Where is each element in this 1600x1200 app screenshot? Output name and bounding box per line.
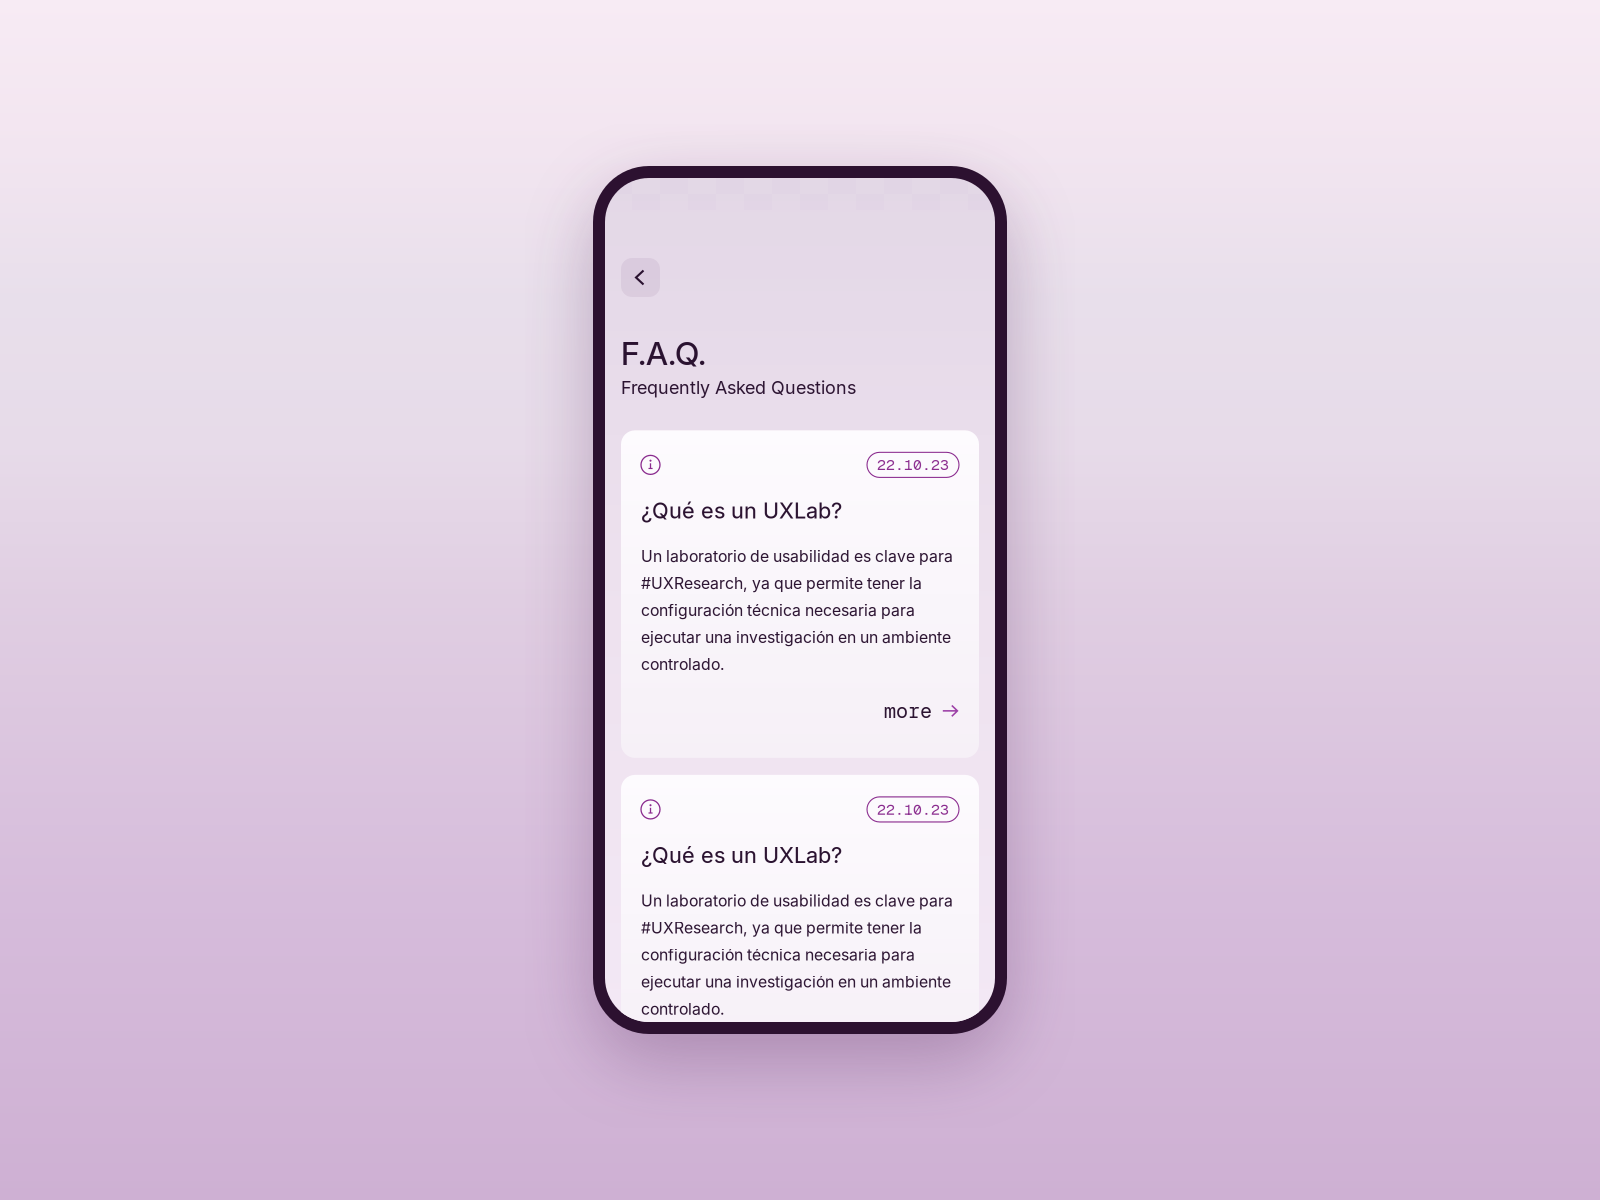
staticText: ¿Qué es un UXLab? [641,497,842,524]
staticText: more [884,698,932,724]
staticText: ¿Qué es un UXLab? [641,842,842,868]
staticText: Un laboratorio de usabilidad es clave pa… [641,547,953,674]
staticText: Frequently Asked Questions [621,377,856,398]
staticText: 22.10.23 [877,455,949,474]
button[interactable]: Information [641,455,660,474]
staticText: F.A.Q. [621,334,706,373]
button[interactable]: Back [621,258,660,297]
button[interactable]: Information [641,800,660,819]
button[interactable]: more [884,698,959,724]
staticText: 22.10.23 [877,800,949,819]
staticText: Un laboratorio de usabilidad es clave pa… [641,891,953,1018]
